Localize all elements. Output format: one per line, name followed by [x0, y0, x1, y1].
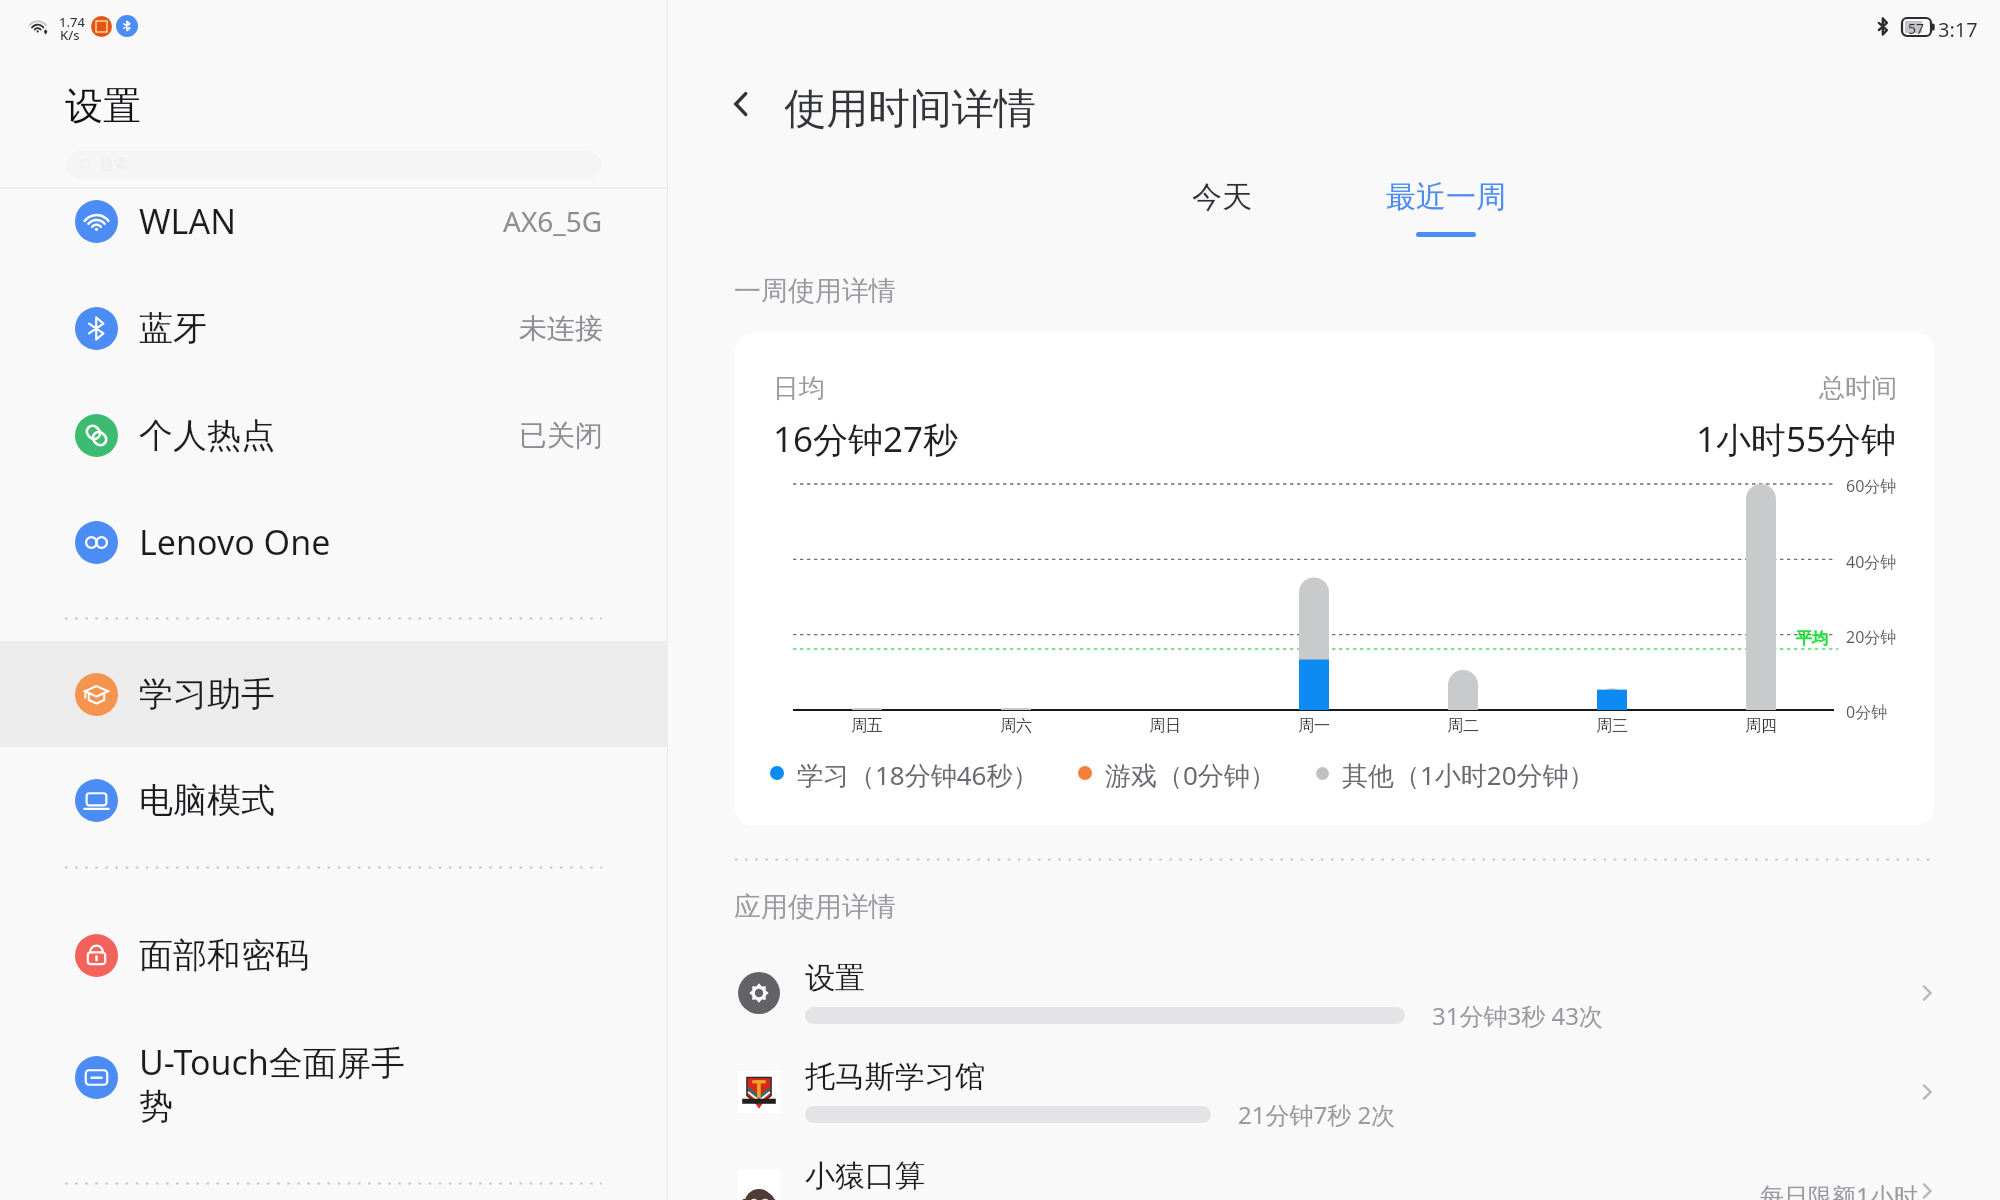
staticText: 面部和密码 [139, 934, 309, 977]
staticText: 3:17 [1938, 16, 1978, 43]
staticText: 今天 [1192, 178, 1252, 216]
staticText: AX6_5G [503, 202, 603, 240]
staticText: 周五 [851, 716, 883, 736]
button[interactable]: U-Touch全面屏手 [0, 1018, 667, 1148]
staticText: 小猿口算 [805, 1157, 925, 1195]
button[interactable]: Lenovo One [0, 489, 667, 595]
staticText: 已关闭 [519, 418, 603, 453]
staticText: U-Touch全面屏手 [139, 1039, 405, 1085]
staticText: K/s [60, 26, 80, 44]
staticText: 游戏（0分钟） [1105, 757, 1276, 789]
staticText: 设置 [65, 82, 141, 130]
staticText: 学习（18分钟46秒） [797, 757, 1039, 789]
staticText: WLAN [139, 198, 237, 244]
staticText: 使用时间详情 [784, 83, 1036, 136]
button[interactable]: Back [718, 81, 764, 127]
staticText: 平均 [1796, 629, 1828, 649]
staticText: 个人热点 [139, 414, 275, 457]
staticText: 未连接 [519, 311, 603, 346]
staticText: 57 [1908, 19, 1925, 37]
button[interactable]: 电脑模式 [0, 747, 667, 853]
staticText: 应用使用详情 [734, 890, 896, 924]
staticText: 每日限额1小时 [1760, 1179, 1918, 1200]
button[interactable]: 学习助手 [0, 641, 667, 747]
staticText: 40分钟 [1846, 551, 1897, 573]
button[interactable]: 个人热点 [0, 382, 667, 488]
button[interactable]: 小猿口算 [668, 1152, 2000, 1200]
button[interactable]: 蓝牙 [0, 275, 667, 381]
staticText: 31分钟3秒 43次 [1432, 999, 1603, 1032]
button[interactable]: 托马斯学习馆 [668, 1053, 2000, 1147]
staticText: 一周使用详情 [734, 274, 896, 308]
staticText: 电脑模式 [139, 779, 275, 822]
staticText: 周四 [1745, 716, 1777, 736]
staticText: 周六 [1000, 716, 1032, 736]
staticText: 60分钟 [1846, 475, 1897, 497]
staticText: 1小时55分钟 [1696, 415, 1897, 463]
staticText: 周二 [1447, 716, 1479, 736]
staticText: 周日 [1149, 716, 1181, 736]
button[interactable]: 最近一周 [1356, 160, 1536, 234]
button[interactable]: 今天 [1142, 160, 1302, 234]
staticText: 最近一周 [1386, 178, 1506, 216]
button[interactable]: 面部和密码 [0, 902, 667, 1008]
staticText: 托马斯学习馆 [805, 1058, 985, 1096]
staticText: 0分钟 [1846, 701, 1888, 723]
staticText: 周一 [1298, 716, 1330, 736]
button[interactable]: WLAN [0, 168, 667, 274]
staticText: 蓝牙 [139, 307, 207, 350]
staticText: 学习助手 [139, 673, 275, 716]
button[interactable]: 设置 [668, 954, 2000, 1048]
staticText: 周三 [1596, 716, 1628, 736]
staticText: 其他（1小时20分钟） [1342, 757, 1595, 789]
staticText: 日均 [773, 372, 825, 405]
staticText: 16分钟27秒 [773, 415, 959, 463]
staticText: 设置 [805, 959, 865, 997]
staticText: 20分钟 [1846, 626, 1897, 648]
staticText: 21分钟7秒 2次 [1238, 1098, 1396, 1131]
staticText: Lenovo One [139, 519, 331, 565]
staticText: 势 [139, 1085, 173, 1128]
staticText: 总时间 [1819, 372, 1897, 405]
staticText: 1.74 [59, 13, 85, 31]
